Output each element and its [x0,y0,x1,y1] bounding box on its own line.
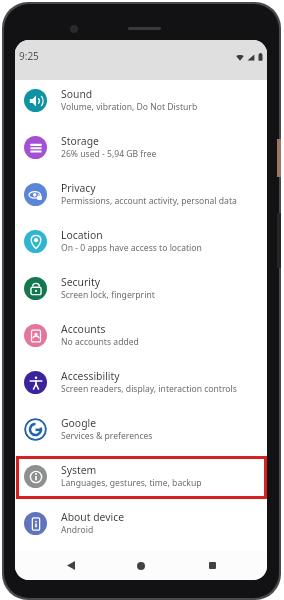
staticText: Storage [61,134,99,148]
staticText: Screen lock, fingerprint [61,289,155,301]
button[interactable]: Location [15,218,267,265]
staticText: Privacy [61,181,96,195]
button[interactable]: Recent apps [197,551,227,580]
staticText: Screen readers, display, interaction con… [61,383,237,395]
staticText: 26% used - 5,94 GB free [61,148,157,160]
staticText: Location [61,228,103,242]
staticText: Sound [61,87,93,101]
staticText: System [61,463,97,477]
staticText: 9:25 [19,49,39,63]
button[interactable]: Sound [15,80,267,124]
button[interactable]: Home [126,551,156,580]
staticText: Languages, gestures, time, backup [61,477,202,489]
button[interactable]: Google [15,406,267,453]
button[interactable]: Accessibility [15,359,267,406]
staticText: On - 0 apps have access to location [61,242,202,254]
staticText: Security [61,275,100,289]
button[interactable]: Back [56,551,86,580]
staticText: Permissions, account activity, personal … [61,195,237,207]
button[interactable]: Security [15,265,267,312]
staticText: Accounts [61,322,106,336]
button[interactable]: Accounts [15,312,267,359]
staticText: Google [61,416,97,430]
button[interactable]: Privacy [15,171,267,218]
button[interactable]: About device [15,500,267,547]
staticText: Accessibility [61,369,120,383]
staticText: Services & preferences [61,430,153,442]
button[interactable]: Storage [15,124,267,171]
staticText: Volume, vibration, Do Not Disturb [61,101,198,113]
staticText: Android [61,524,94,536]
staticText: About device [61,510,125,524]
button[interactable]: System [15,453,267,500]
staticText: No accounts added [61,336,139,348]
